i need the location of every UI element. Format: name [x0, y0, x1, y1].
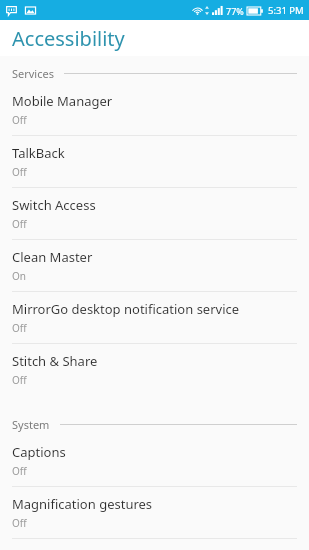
button[interactable]: Stitch & Share — [0, 344, 309, 395]
staticText: Magnification gestures — [12, 495, 153, 513]
staticText: Services — [12, 66, 54, 81]
staticText: Off — [12, 217, 27, 231]
staticText: Switch Access — [12, 196, 96, 214]
staticText: TalkBack — [12, 144, 65, 162]
button[interactable]: Magnification gestures — [0, 487, 309, 539]
button[interactable]: MirrorGo desktop notification service — [0, 292, 309, 344]
button[interactable]: Switch Access — [0, 188, 309, 240]
staticText: 77% — [226, 5, 244, 17]
staticText: Clean Master — [12, 248, 93, 266]
button[interactable]: Mobile Manager — [0, 84, 309, 136]
staticText: On — [12, 269, 26, 283]
staticText: 5:31 PM — [268, 4, 304, 17]
button[interactable]: TalkBack — [0, 136, 309, 188]
staticText: Off — [12, 516, 27, 530]
staticText: Off — [12, 321, 27, 335]
staticText: MirrorGo desktop notification service — [12, 300, 240, 318]
staticText: System — [12, 417, 50, 432]
button[interactable]: Captions — [0, 435, 309, 487]
button[interactable]: Clean Master — [0, 240, 309, 292]
staticText: Off — [12, 165, 27, 179]
staticText: Off — [12, 464, 27, 478]
staticText: Accessibility — [12, 25, 125, 52]
staticText: Mobile Manager — [12, 92, 113, 110]
staticText: Off — [12, 373, 27, 387]
staticText: Stitch & Share — [12, 352, 98, 370]
staticText: Off — [12, 113, 27, 127]
staticText: Captions — [12, 443, 66, 461]
